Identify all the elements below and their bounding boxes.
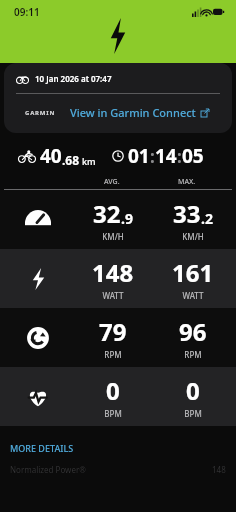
other: Cadence [25,325,51,351]
other: Speed [25,207,51,233]
staticText: Normalized Power® [10,464,86,475]
button[interactable]: MORE DETAILS [0,440,84,456]
staticText: : [177,145,182,168]
other: Heart rate [25,384,51,410]
staticText: .9 [121,209,133,228]
staticText: RPM [104,349,122,360]
staticText: KM/H [102,231,124,242]
staticText: 05 [182,143,204,169]
staticText: : [150,145,155,168]
staticText: MAX. [178,177,196,187]
button[interactable]: Cadence [0,308,236,367]
staticText: View in Garmin Connect [70,105,196,120]
button[interactable]: Heart rate [0,367,236,426]
staticText: 09:11 [14,5,40,19]
staticText: BPM [184,408,202,419]
button[interactable]: Speed [0,190,236,249]
staticText: 148 [92,256,134,289]
staticText: GARMIN [25,109,56,117]
button[interactable]: GARMIN [16,105,220,120]
staticText: 10 Jan 2026 at 07:47 [35,73,112,84]
staticText: 161 [172,256,214,289]
staticText: 79 [99,315,127,348]
staticText: 14 [155,143,177,169]
staticText: km [82,155,96,167]
staticText: 148 [212,464,226,475]
staticText: .68 [62,152,80,168]
staticText: 96 [179,315,207,348]
staticText: 0 [106,374,120,407]
other: Power [25,266,51,292]
staticText: 0 [186,374,200,407]
button[interactable]: Power [0,249,236,308]
staticText: 40 [40,143,62,169]
staticText: 32 [93,197,121,230]
staticText: KM/H [182,231,204,242]
staticText: WATT [102,290,124,301]
staticText: AVG. [104,177,120,187]
staticText: BPM [104,408,122,419]
staticText: RPM [184,349,202,360]
staticText: 33 [173,197,201,230]
staticText: WATT [182,290,204,301]
staticText: 01 [128,143,150,169]
staticText: .2 [201,209,213,228]
